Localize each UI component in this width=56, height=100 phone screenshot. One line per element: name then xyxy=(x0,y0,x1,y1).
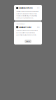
staticText: YESTERDAY xyxy=(16,23,25,25)
staticText: 8:05 xyxy=(37,26,40,28)
staticText: The service syncs your data across all o… xyxy=(16,29,38,36)
staticText: Apple today announced a new suite of clo… xyxy=(16,10,38,19)
staticText: 9:41 xyxy=(37,7,40,9)
staticText: MobileMe and iTunes xyxy=(19,7,33,9)
staticText: MobileMe Preview xyxy=(19,26,31,28)
staticText: More xyxy=(26,40,30,42)
button[interactable]: More xyxy=(25,40,31,43)
